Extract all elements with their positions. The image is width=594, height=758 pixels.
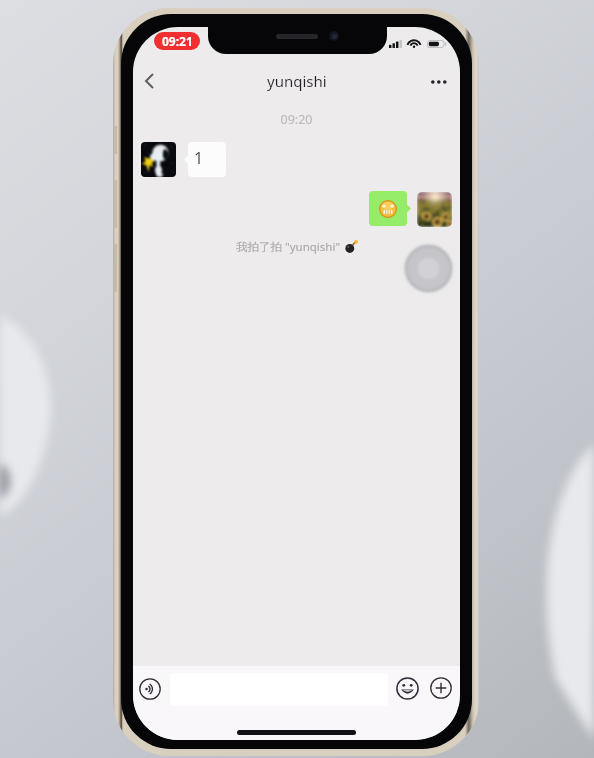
button[interactable]: Emoji bbox=[392, 673, 422, 703]
staticText: 我拍了拍 "yunqishi" bbox=[236, 239, 341, 255]
staticText: 09:20 bbox=[133, 111, 460, 128]
staticText: yunqishi bbox=[267, 71, 327, 91]
button[interactable]: More options bbox=[421, 64, 457, 100]
button[interactable]: Voice input bbox=[135, 674, 165, 704]
button[interactable]: Back bbox=[133, 60, 166, 102]
button[interactable]: My avatar bbox=[417, 192, 452, 227]
staticText: 1 bbox=[194, 147, 204, 169]
button[interactable]: Assistive touch bbox=[403, 243, 454, 294]
staticText: 09:21 bbox=[162, 33, 193, 49]
button[interactable]: More functions bbox=[426, 673, 456, 703]
button[interactable]: Contact avatar bbox=[141, 142, 176, 177]
